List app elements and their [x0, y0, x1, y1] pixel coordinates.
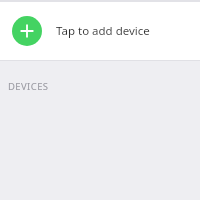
button[interactable]: Tap to add device — [0, 2, 200, 60]
staticText: Tap to add device — [56, 23, 150, 39]
staticText: DEVICES — [8, 80, 49, 93]
